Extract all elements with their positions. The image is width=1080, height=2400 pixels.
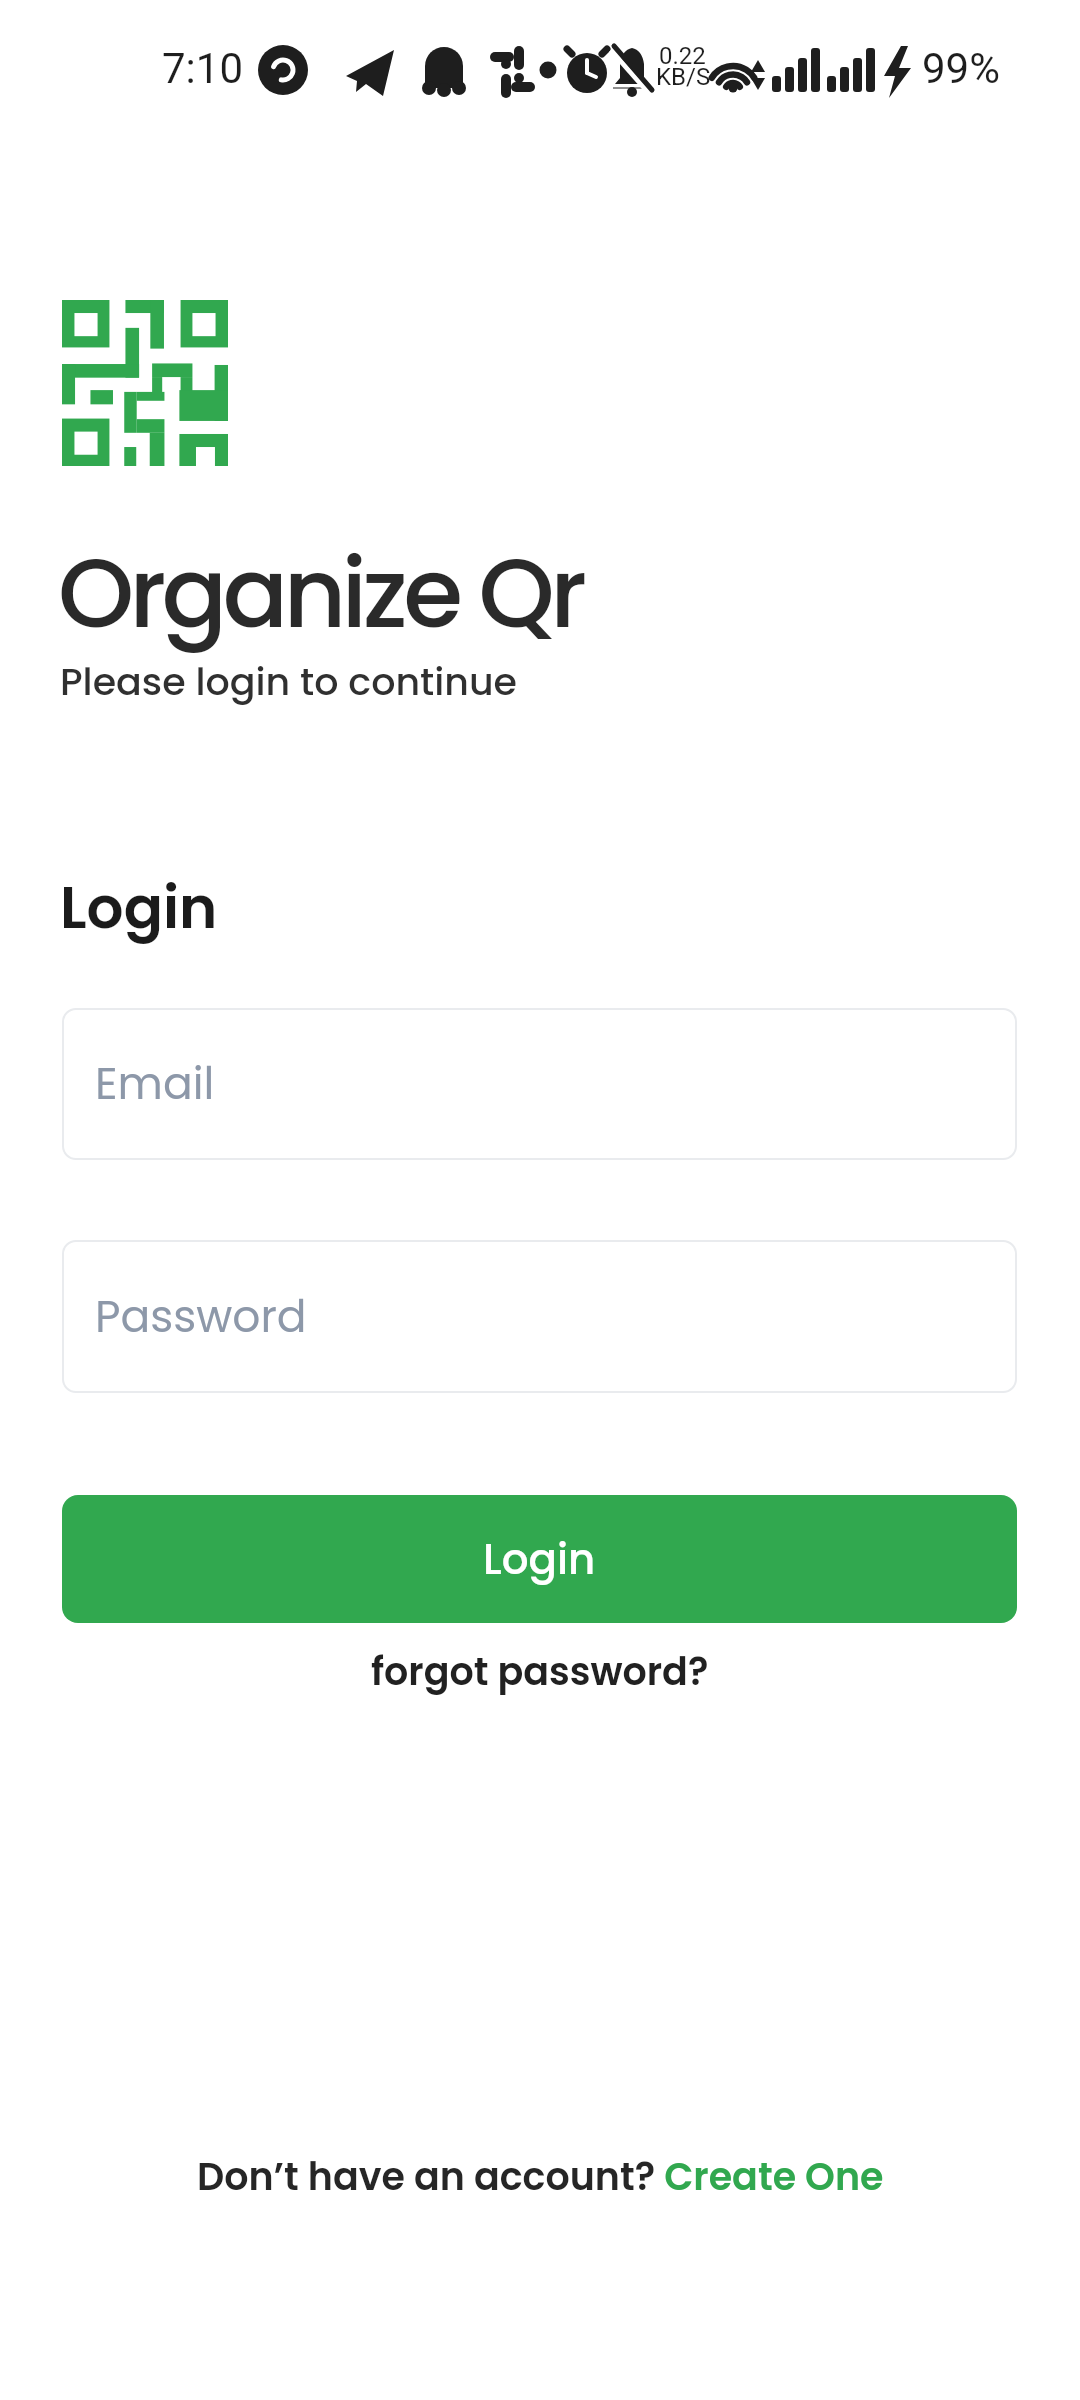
staticText: Login <box>483 1530 596 1589</box>
staticText: Login <box>60 867 218 948</box>
staticText: 99% <box>922 44 1000 93</box>
staticText: 7:10 <box>162 44 243 93</box>
staticText: KB/S <box>656 63 711 91</box>
staticText: Please login to continue <box>60 655 517 708</box>
staticText: Organize Qr <box>58 525 583 661</box>
staticText: Email <box>95 1053 215 1115</box>
button[interactable]: Login <box>62 1495 1017 1623</box>
button[interactable]: forgot password? <box>371 1645 709 1698</box>
staticText: Password <box>95 1286 307 1348</box>
button[interactable]: Email <box>62 1008 1017 1160</box>
staticText: 0.22 <box>659 42 706 70</box>
button[interactable]: Don’t have an account? Create One <box>197 2150 884 2203</box>
button[interactable]: Password <box>62 1240 1017 1393</box>
